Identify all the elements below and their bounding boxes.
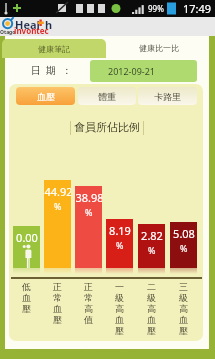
staticText: %: [180, 242, 188, 254]
staticText: 血: [179, 314, 188, 325]
staticText: 壓: [115, 325, 124, 336]
staticText: 級: [179, 292, 188, 303]
staticText: 壓: [179, 325, 188, 336]
button[interactable]: 健康比一比: [108, 37, 209, 58]
staticText: 壓: [53, 314, 62, 325]
staticText: 血壓: [37, 91, 55, 102]
staticText: 低: [22, 281, 31, 292]
staticText: 級: [147, 292, 156, 303]
staticText: 高: [115, 303, 124, 314]
staticText: 8.19: [109, 223, 131, 238]
staticText: Otago: [0, 29, 16, 36]
staticText: 2012-09-21: [108, 65, 155, 77]
staticText: 體重: [98, 91, 116, 102]
button[interactable]: 血壓: [16, 87, 75, 105]
staticText: Heal: [15, 17, 40, 32]
staticText: 級: [115, 292, 124, 303]
staticText: 健康筆記: [38, 44, 70, 54]
staticText: 卡路里: [154, 91, 181, 102]
staticText: 高: [179, 303, 188, 314]
staticText: 血: [115, 314, 124, 325]
staticText: invontec: [14, 25, 49, 36]
staticText: 5.08: [173, 226, 195, 241]
staticText: 血: [53, 303, 62, 314]
staticText: 會員所佔比例: [74, 120, 140, 134]
staticText: 期: [46, 64, 56, 77]
staticText: 血: [147, 314, 156, 325]
button[interactable]: 卡路里: [138, 87, 197, 105]
staticText: 正: [53, 281, 62, 292]
staticText: 三: [179, 281, 188, 292]
staticText: %: [85, 206, 93, 218]
staticText: %: [148, 244, 156, 256]
staticText: 二: [147, 281, 156, 292]
staticText: 壓: [22, 303, 31, 314]
staticText: 99%: [148, 3, 164, 14]
staticText: 高: [147, 303, 156, 314]
staticText: 值: [84, 314, 93, 325]
staticText: 壓: [147, 325, 156, 336]
staticText: 常: [84, 292, 93, 303]
button[interactable]: 體重: [78, 87, 136, 105]
staticText: %: [54, 200, 62, 212]
staticText: %: [116, 239, 124, 251]
staticText: 0.00: [16, 230, 38, 245]
staticText: 44.92: [44, 184, 71, 199]
staticText: 日: [31, 64, 41, 77]
staticText: 2.82: [141, 228, 163, 243]
button[interactable]: 健康筆記: [2, 39, 106, 58]
staticText: 38.98: [75, 190, 102, 205]
staticText: 血: [22, 292, 31, 303]
button[interactable]: 2012-09-21: [90, 60, 197, 82]
staticText: ：: [62, 64, 72, 77]
staticText: 常: [53, 292, 62, 303]
staticText: 高: [84, 303, 93, 314]
staticText: 17:49: [183, 1, 212, 16]
staticText: 正: [84, 281, 93, 292]
staticText: 健康比一比: [139, 43, 179, 53]
staticText: 一: [115, 281, 124, 292]
staticText: h: [45, 17, 53, 32]
